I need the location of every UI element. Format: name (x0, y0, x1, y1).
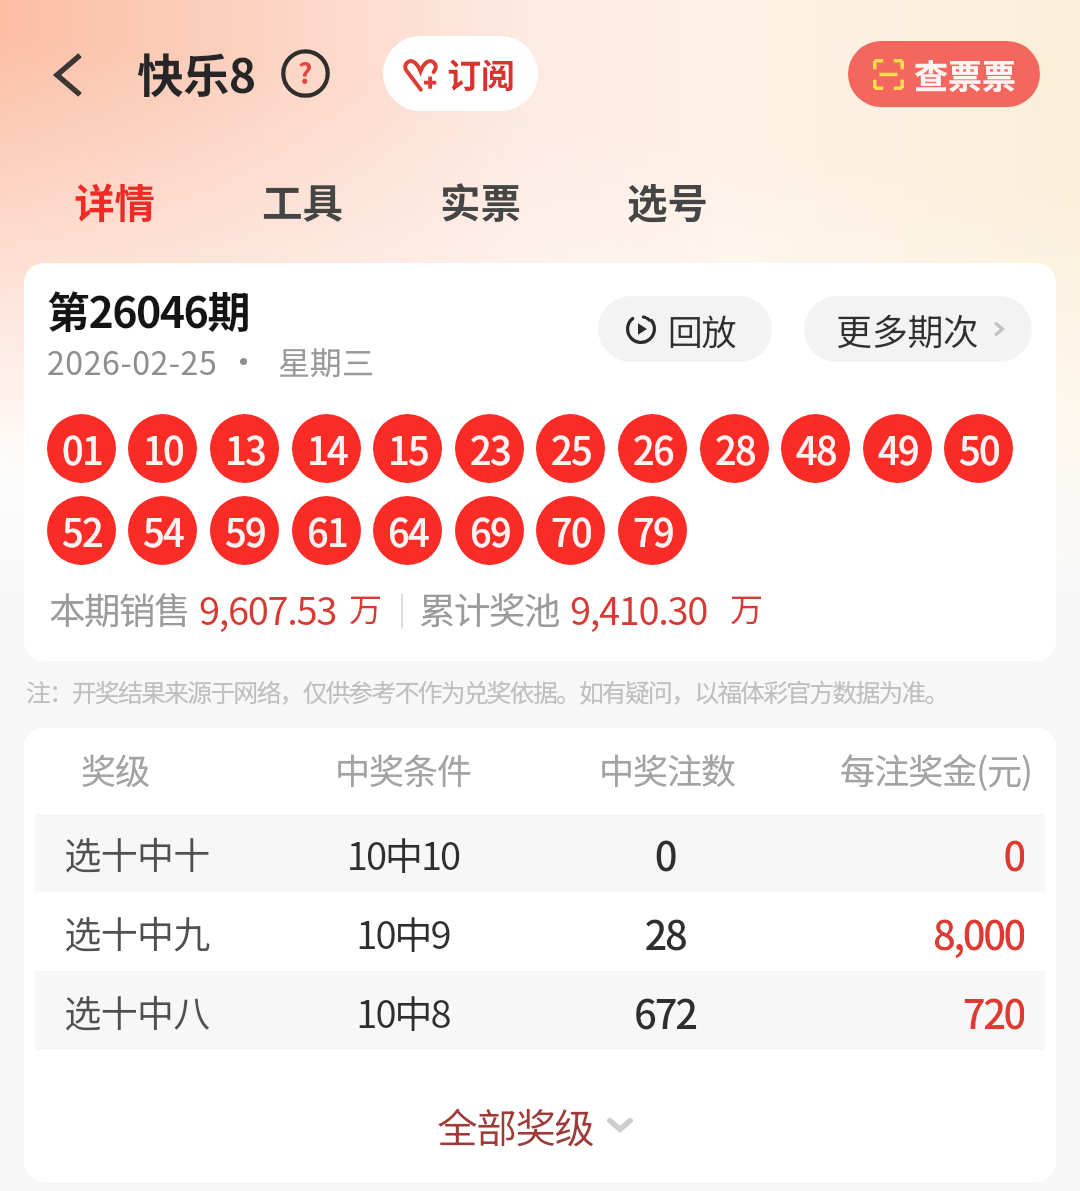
button[interactable]: 回放 (598, 296, 772, 362)
staticText: 奖级 (24, 743, 265, 794)
staticText: 0 (515, 825, 815, 881)
button[interactable] (35, 971, 1045, 1050)
staticText: 28 (515, 904, 815, 960)
staticText: 13 (225, 421, 265, 476)
button[interactable]: 工具 (238, 150, 366, 254)
staticText: 工具 (262, 171, 343, 230)
staticText: 25 (551, 421, 591, 476)
button[interactable]: 全部奖级 (24, 1085, 1051, 1165)
button[interactable]: 查票票 (848, 41, 1040, 107)
staticText: 累计奖池 (419, 582, 559, 635)
staticText: 9,607.53 (199, 581, 336, 636)
staticText: 每注奖金(元) (786, 743, 1056, 794)
button[interactable]: 详情 (50, 150, 178, 254)
staticText: 26 (633, 421, 673, 476)
button[interactable] (35, 814, 1045, 893)
staticText: 万 (730, 584, 763, 632)
staticText: 01 (62, 421, 102, 476)
staticText: 回放 (668, 304, 736, 355)
button[interactable] (35, 892, 1045, 971)
button[interactable]: 更多期次 (804, 296, 1032, 362)
button[interactable]: Back (34, 41, 102, 109)
staticText: 注：开奖结果来源于网络，仅供参考不作为兑奖依据。如有疑问，以福体彩官方数据为准。 (26, 673, 948, 709)
staticText: 实票 (440, 171, 521, 230)
staticText: 10中9 (253, 905, 553, 960)
staticText: 61 (307, 503, 347, 558)
staticText: 0 (724, 825, 1024, 881)
staticText: 本期销售 (49, 582, 189, 635)
staticText: 54 (143, 503, 183, 558)
staticText: 15 (388, 421, 428, 476)
staticText: 23 (470, 421, 510, 476)
staticText: ? (298, 52, 313, 93)
staticText: 50 (959, 421, 999, 476)
staticText: 第26046期 (47, 278, 249, 340)
staticText: 10中10 (253, 826, 553, 881)
staticText: 672 (515, 983, 815, 1039)
staticText: 星期三 (278, 338, 375, 384)
staticText: 64 (388, 503, 428, 558)
staticText: 选十中八 (24, 984, 287, 1038)
button[interactable]: 选号 (603, 150, 731, 254)
staticText: 选号 (627, 171, 708, 230)
staticText: 选十中十 (24, 826, 287, 880)
staticText: 79 (633, 503, 673, 558)
staticText: 中奖注数 (517, 743, 817, 794)
staticText: 28 (715, 421, 755, 476)
staticText: 48 (796, 421, 836, 476)
staticText: 59 (225, 503, 265, 558)
staticText: 2026-02-25 (47, 338, 218, 384)
staticText: 69 (470, 503, 510, 558)
staticText: 9,410.30 (570, 581, 707, 636)
staticText: 中奖条件 (253, 743, 553, 794)
staticText: 8,000 (724, 904, 1024, 960)
staticText: 49 (878, 421, 918, 476)
staticText: 70 (551, 503, 591, 558)
staticText: 全部奖级 (437, 1096, 594, 1155)
staticText: 更多期次 (836, 303, 979, 355)
button[interactable]: 实票 (416, 150, 544, 254)
button[interactable]: Help (281, 49, 330, 98)
staticText: 快乐8 (137, 39, 256, 106)
staticText: 详情 (74, 171, 155, 230)
staticText: 选十中九 (24, 905, 287, 959)
staticText: 52 (62, 503, 102, 558)
staticText: 14 (307, 421, 347, 476)
staticText: 订阅 (447, 49, 515, 98)
staticText: 查票票 (914, 50, 1016, 99)
staticText: 万 (349, 584, 382, 632)
staticText: 10 (143, 421, 183, 476)
staticText: 10中8 (253, 984, 553, 1039)
button[interactable]: 订阅 (383, 36, 538, 111)
staticText: 720 (724, 983, 1024, 1039)
